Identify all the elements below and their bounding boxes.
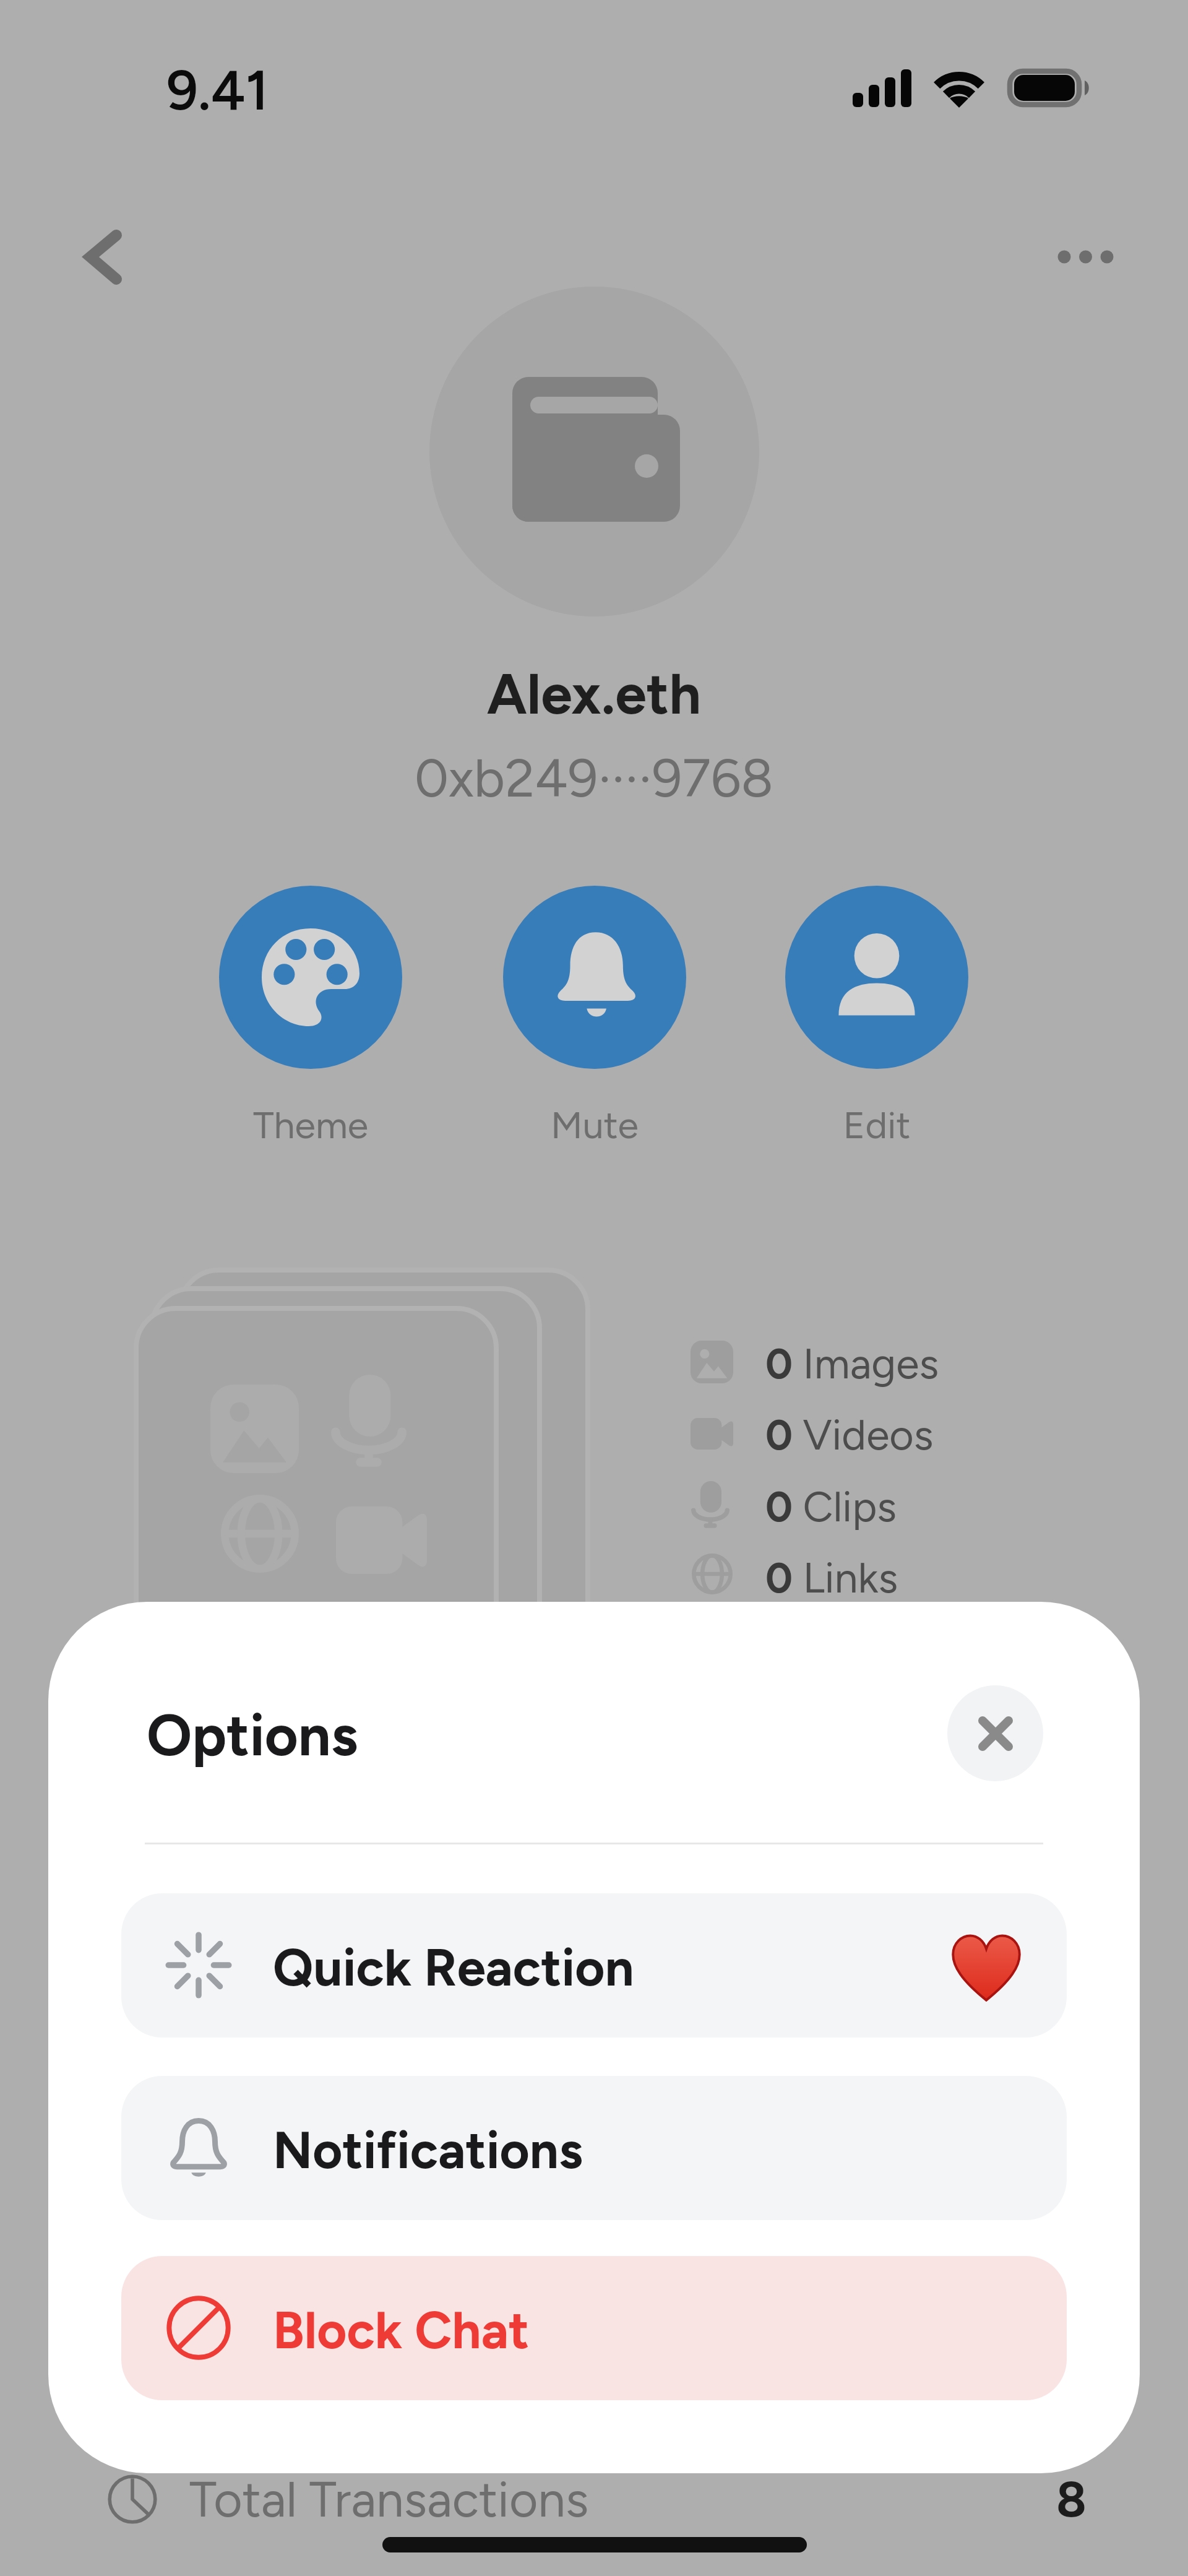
staticText: 0 [765,1409,793,1460]
button[interactable]: Profile picture [429,287,759,616]
button[interactable]: Edit [785,886,968,1139]
staticText: 0 Videos [765,1409,934,1460]
staticText: 9.41 [166,57,269,123]
staticText: Block Chat [273,2299,530,2361]
button[interactable]: Notifications [121,2076,1067,2220]
staticText: Notifications [273,2119,583,2181]
staticText: 0 Links [765,1552,898,1603]
button[interactable]: 0 Links [691,1541,950,1606]
staticText: Quick Reaction [273,1937,634,1999]
staticText: Options [147,1701,358,1770]
staticText: 0 [765,1552,793,1603]
button[interactable]: Theme [219,886,402,1139]
staticText: Edit [785,1102,968,1148]
button[interactable]: 0 Clips [691,1470,950,1534]
staticText: Alex.eth [0,660,1188,728]
button[interactable]: Mute [503,886,686,1139]
button[interactable]: 0 Images [691,1327,950,1391]
staticText: 8 [1056,2470,1087,2529]
button[interactable]: Back [66,220,140,294]
staticText: Total Transactions [189,2470,589,2529]
staticText: 0 [765,1338,793,1389]
button[interactable]: Close [947,1685,1043,1781]
button[interactable]: Block Chat [121,2256,1067,2400]
staticText: Mute [503,1102,686,1148]
button[interactable]: Quick Reaction [121,1893,1067,2038]
button[interactable]: 0 Videos [691,1398,950,1463]
button[interactable]: More options [1046,220,1120,294]
staticText: 0xb249····9768 [0,746,1188,810]
staticText: 0 [765,1481,793,1532]
staticText: 0 Images [765,1338,939,1389]
staticText: 0 Clips [765,1481,897,1532]
staticText: Theme [219,1102,402,1148]
